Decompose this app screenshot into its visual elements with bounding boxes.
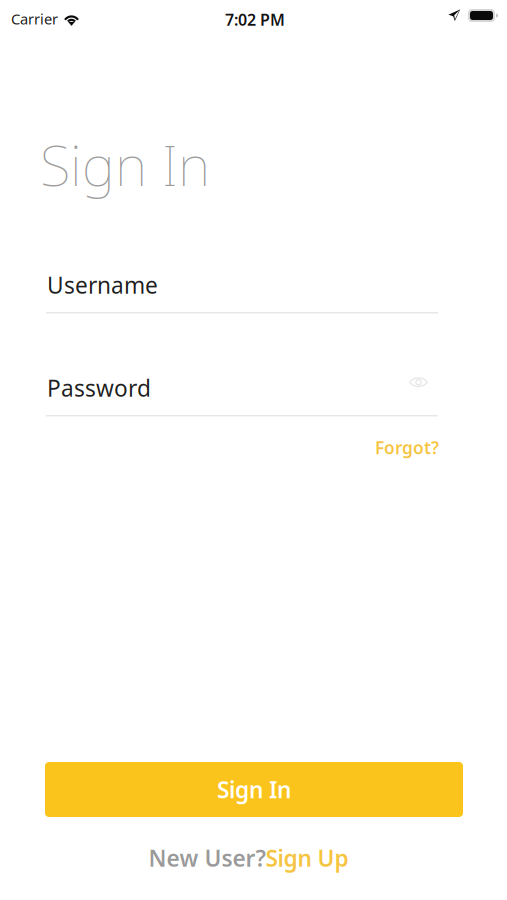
- staticText: Carrier: [11, 9, 58, 28]
- button[interactable]: Forgot?: [375, 433, 441, 461]
- staticText: Password: [47, 373, 151, 403]
- staticText: Sign Up: [265, 843, 348, 873]
- button[interactable]: Password: [46, 371, 438, 416]
- button[interactable]: Sign In: [45, 762, 463, 817]
- staticText: Username: [47, 270, 158, 300]
- staticText: Sign In: [217, 774, 291, 804]
- staticText: Sign In: [40, 127, 210, 201]
- button[interactable]: Sign Up: [265, 843, 348, 873]
- staticText: Forgot?: [375, 436, 439, 459]
- staticText: New User?: [148, 843, 265, 873]
- button[interactable]: Show password: [401, 366, 436, 399]
- staticText: 7:02 PM: [225, 9, 285, 30]
- button[interactable]: Username: [46, 268, 438, 313]
